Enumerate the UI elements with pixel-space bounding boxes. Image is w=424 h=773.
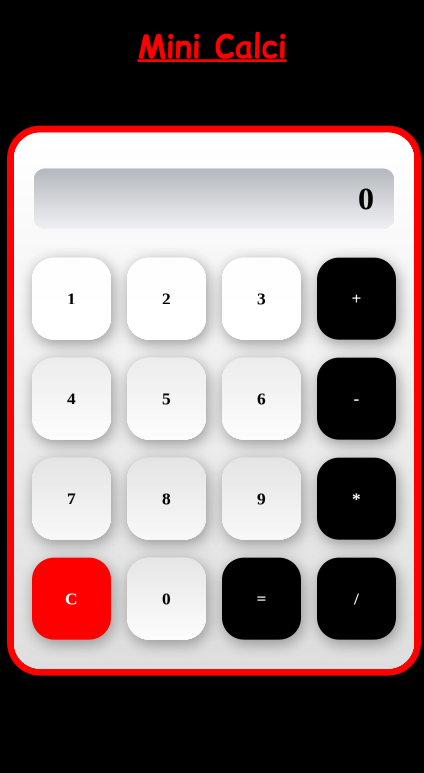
staticText: C <box>65 589 78 608</box>
staticText: = <box>256 589 266 608</box>
staticText: 2 <box>162 289 171 308</box>
button[interactable]: 0 <box>127 558 206 640</box>
staticText: 0 <box>162 589 171 608</box>
button[interactable]: 4 <box>32 358 111 440</box>
button[interactable]: Subtract <box>317 358 396 440</box>
staticText: - <box>353 389 359 408</box>
staticText: + <box>351 289 361 308</box>
staticText: 9 <box>257 489 266 508</box>
button[interactable]: 8 <box>127 458 206 540</box>
staticText: 6 <box>257 389 266 408</box>
button[interactable]: 1 <box>32 258 111 340</box>
button[interactable]: 5 <box>127 358 206 440</box>
staticText: 4 <box>67 389 76 408</box>
button[interactable]: 3 <box>222 258 301 340</box>
button[interactable]: Add <box>317 258 396 340</box>
staticText: * <box>352 489 361 508</box>
button[interactable]: 9 <box>222 458 301 540</box>
staticText: / <box>354 589 359 608</box>
button[interactable]: 7 <box>32 458 111 540</box>
staticText: Mini Calci <box>137 24 286 69</box>
button[interactable]: Divide <box>317 558 396 640</box>
button[interactable]: Multiply <box>317 458 396 540</box>
button[interactable]: 6 <box>222 358 301 440</box>
staticText: 5 <box>162 389 171 408</box>
staticText: 0 <box>358 181 374 216</box>
staticText: 8 <box>162 489 171 508</box>
staticText: 7 <box>67 489 76 508</box>
button[interactable]: 2 <box>127 258 206 340</box>
staticText: 1 <box>67 289 76 308</box>
button[interactable]: Clear <box>32 558 111 640</box>
button[interactable]: Equals <box>222 558 301 640</box>
staticText: 3 <box>257 289 266 308</box>
